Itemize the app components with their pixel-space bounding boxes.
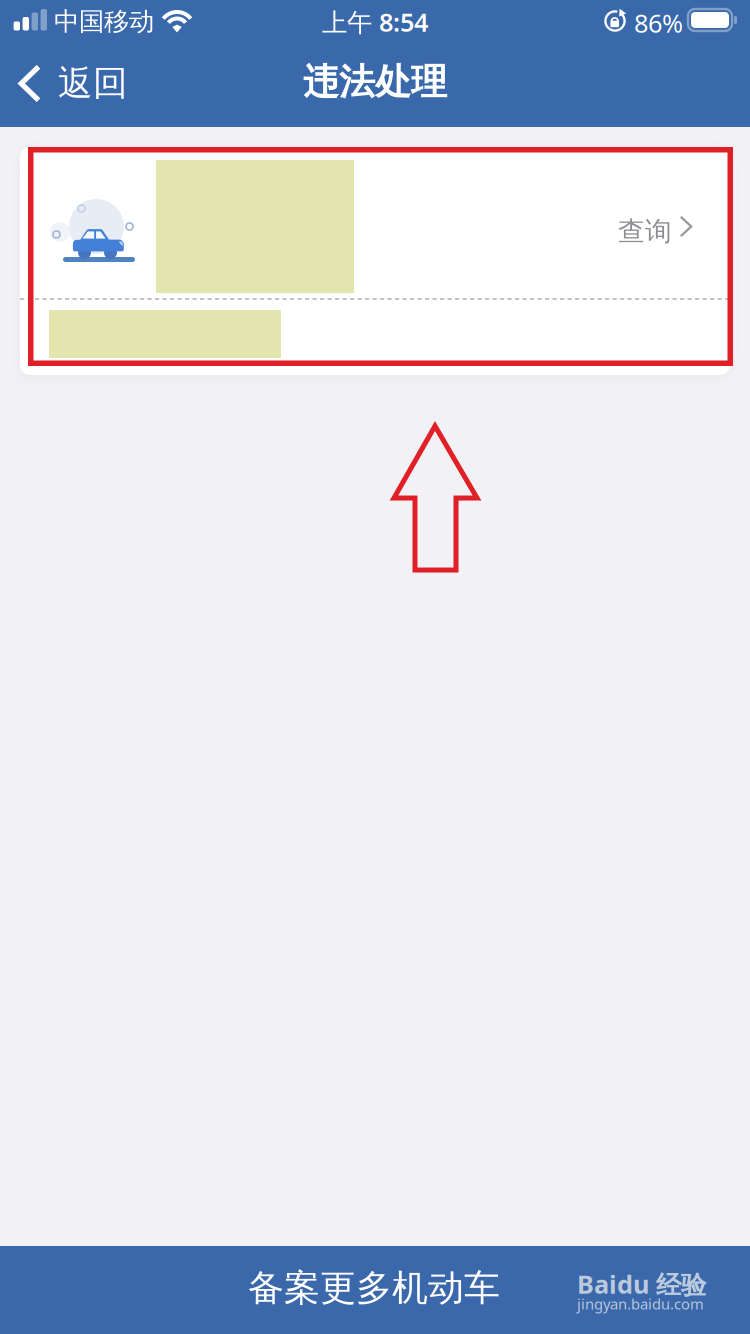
staticText: jingyan.baidu.com (577, 1294, 704, 1313)
staticText: 中国移动 (54, 6, 154, 37)
staticText: Baidu 经验 (577, 1267, 706, 1301)
staticText: 上午 8:54 (322, 5, 428, 39)
button[interactable]: 备案更多机动车 (0, 1246, 750, 1334)
staticText: 返回 (58, 62, 128, 105)
button[interactable]: 返回 (0, 46, 128, 127)
staticText: 备案更多机动车 (248, 1266, 500, 1310)
staticText: 查询 (618, 215, 672, 248)
staticText: 违法处理 (303, 60, 447, 104)
button[interactable]: 查询 (20, 147, 730, 375)
staticText: 86% (634, 6, 683, 40)
